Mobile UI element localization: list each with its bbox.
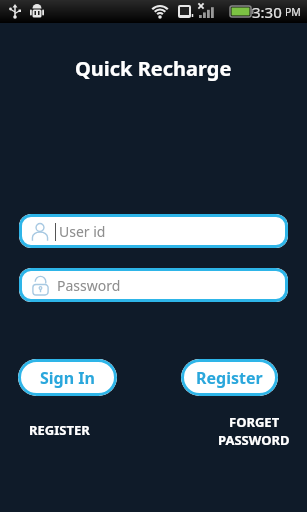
staticText: User id bbox=[59, 222, 106, 241]
button[interactable]: User id bbox=[19, 214, 288, 248]
button[interactable]: Sign In bbox=[18, 359, 117, 396]
button[interactable]: Register bbox=[181, 359, 278, 396]
staticText: REGISTER bbox=[29, 421, 90, 439]
staticText: Quick Recharge bbox=[75, 55, 232, 82]
staticText: Password bbox=[57, 276, 121, 295]
staticText: Sign In bbox=[40, 367, 95, 389]
staticText: PASSWORD bbox=[218, 431, 290, 449]
staticText: 3:30 bbox=[252, 2, 282, 22]
staticText: PM bbox=[285, 5, 301, 19]
button[interactable]: Password bbox=[19, 268, 288, 302]
button[interactable]: REGISTER bbox=[29, 421, 90, 439]
staticText: FORGET bbox=[229, 413, 280, 431]
staticText: Register bbox=[196, 367, 263, 389]
button[interactable]: FORGET bbox=[218, 413, 290, 449]
